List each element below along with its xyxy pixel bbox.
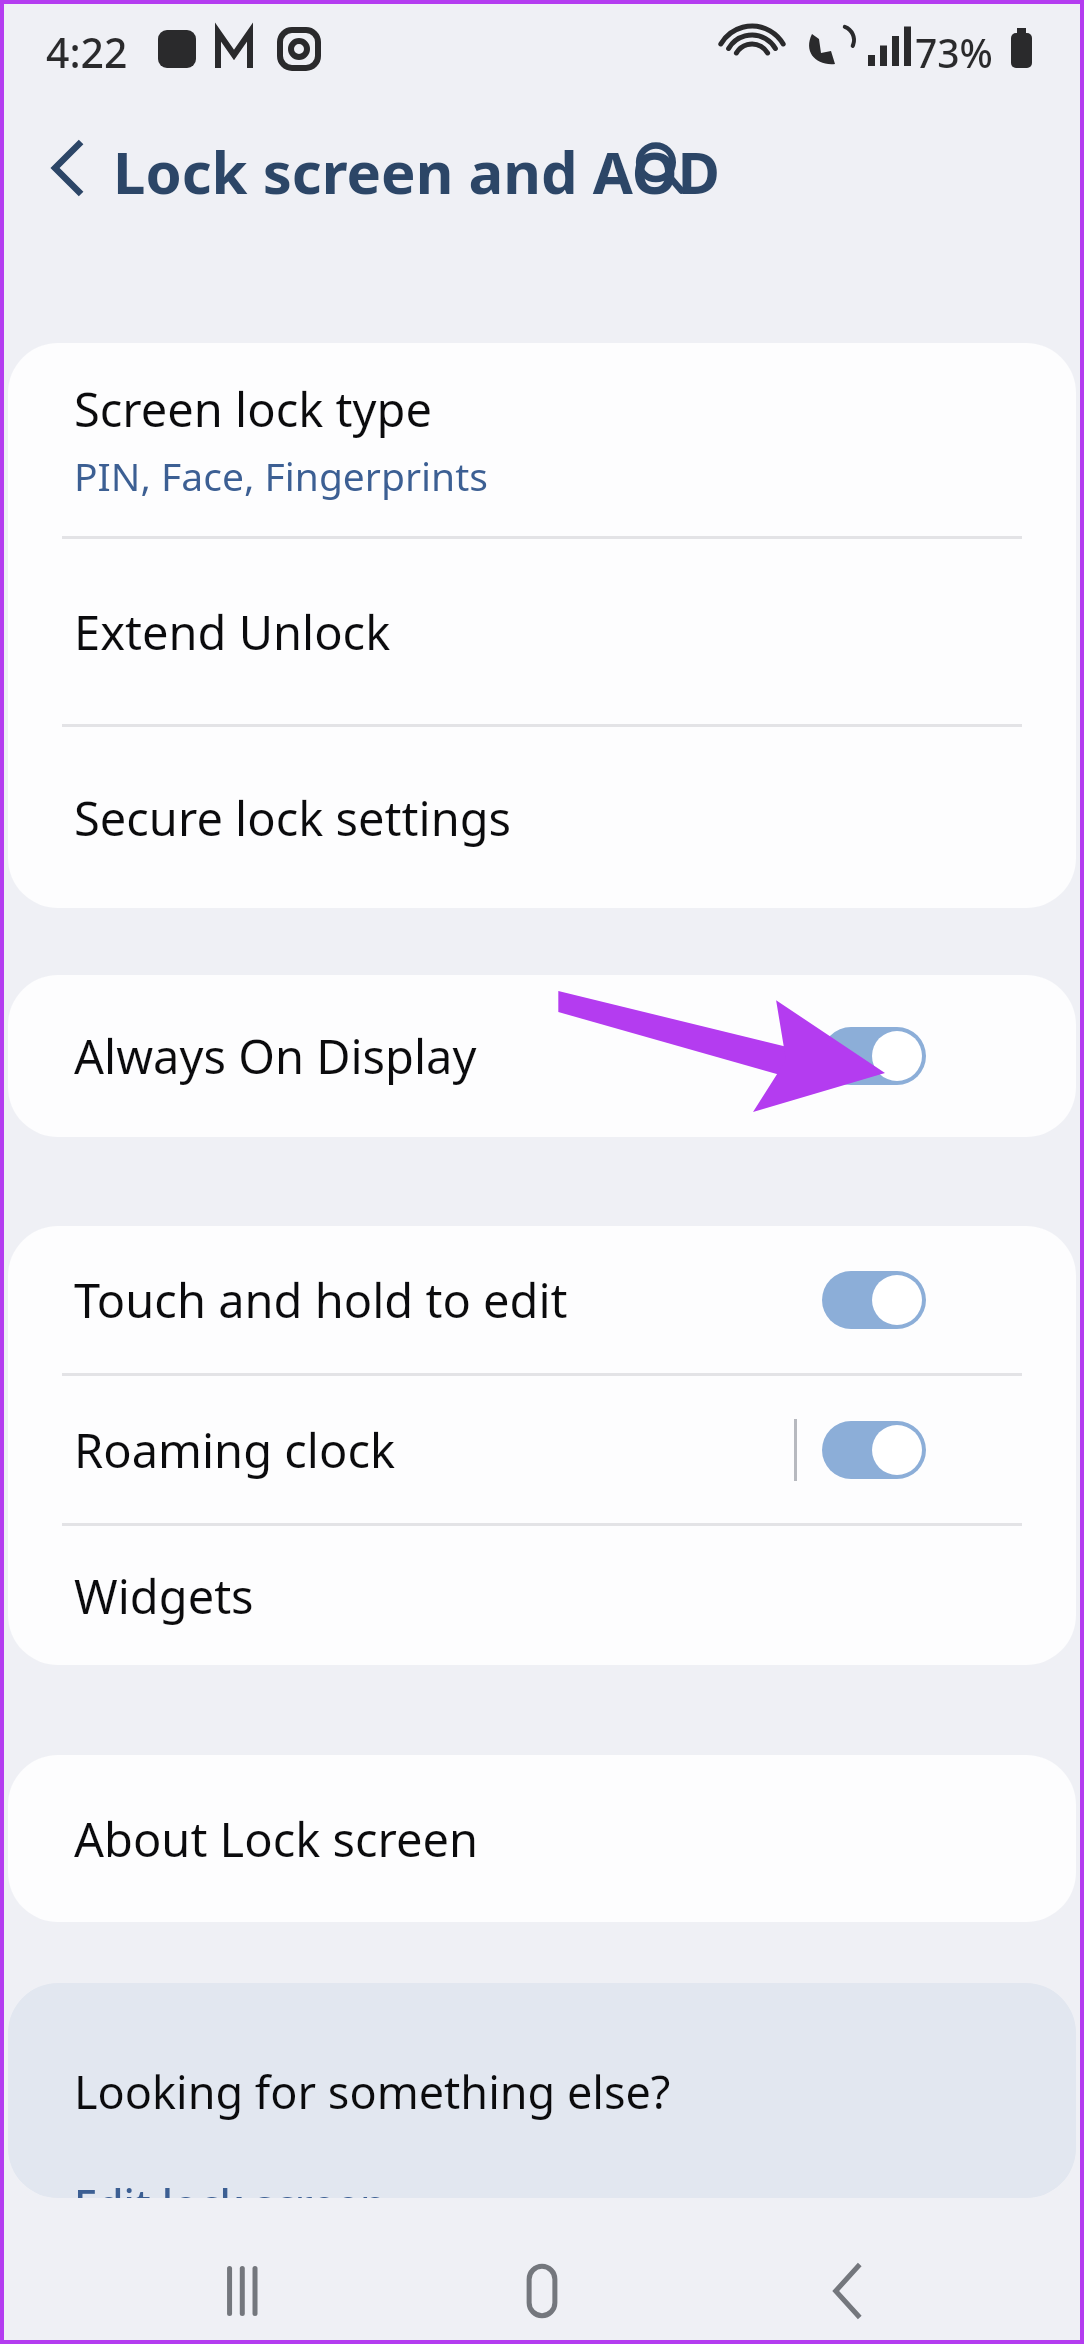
button[interactable]: Switch, on	[822, 1421, 926, 1479]
staticText: Extend Unlock	[74, 600, 391, 664]
button[interactable]: Roaming clock	[8, 1376, 1076, 1523]
button[interactable]: Widgets	[8, 1526, 1076, 1665]
staticText: Touch and hold to edit	[74, 1268, 794, 1332]
staticText: 4:22	[46, 24, 128, 80]
button[interactable]: Switch, on	[822, 1271, 926, 1329]
button[interactable]: Touch and hold to edit	[8, 1226, 1076, 1373]
staticText: Widgets	[74, 1564, 254, 1628]
staticText: Lock screen and AOD	[113, 132, 720, 211]
button[interactable]: Navigate up	[18, 118, 118, 218]
button[interactable]: Recent apps	[180, 2228, 306, 2344]
staticText: Roaming clock	[74, 1418, 794, 1482]
staticText: Looking for something else?	[74, 2061, 671, 2122]
button[interactable]: Back	[785, 2228, 911, 2344]
button[interactable]: Always On Display	[8, 975, 1076, 1137]
staticText: Always On Display	[74, 1024, 794, 1088]
button[interactable]: About Lock screen	[8, 1755, 1076, 1922]
button[interactable]: Search	[610, 118, 710, 218]
button[interactable]: Home	[479, 2228, 605, 2344]
button[interactable]: Secure lock settings	[8, 727, 1076, 908]
button[interactable]: Extend Unlock	[8, 539, 1076, 724]
button[interactable]: Looking for something else?	[8, 1983, 1076, 2198]
staticText: PIN, Face, Fingerprints	[74, 449, 488, 502]
button[interactable]: Screen lock type	[8, 343, 1076, 536]
staticText: Secure lock settings	[74, 786, 512, 850]
staticText: About Lock screen	[74, 1807, 479, 1871]
staticText: Screen lock type	[74, 377, 432, 441]
button[interactable]: Switch, on	[822, 1027, 926, 1085]
staticText: Edit lock screen	[74, 2175, 387, 2198]
staticText: 73%	[915, 26, 993, 79]
